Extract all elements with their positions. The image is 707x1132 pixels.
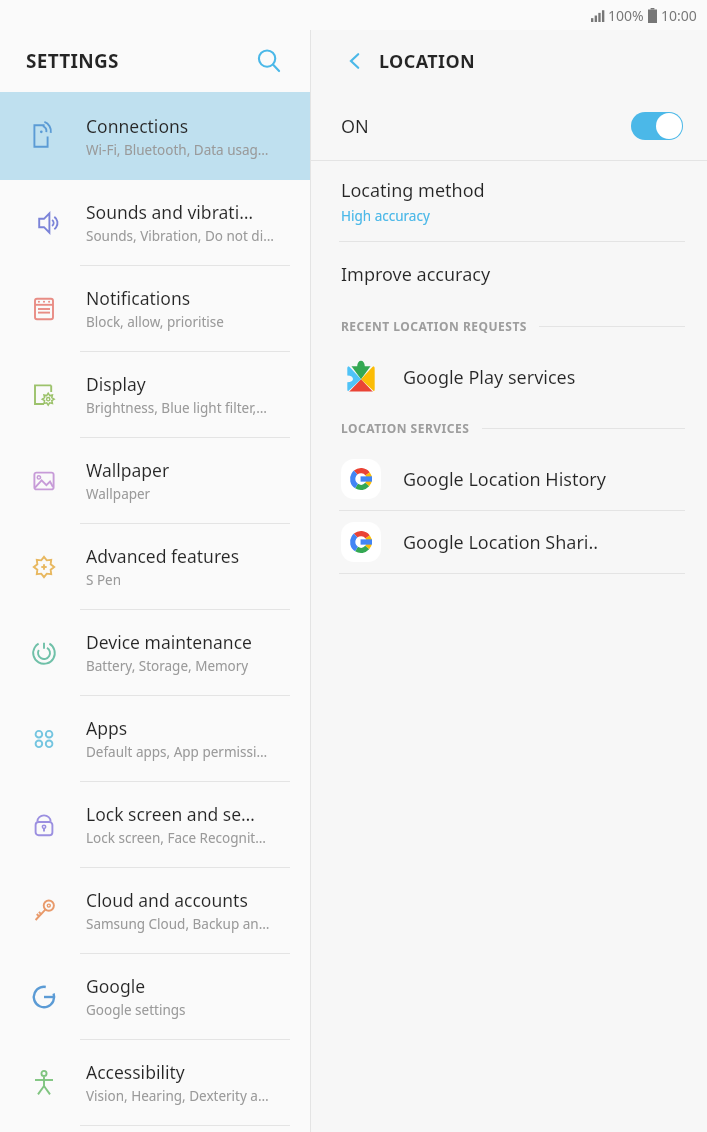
staticText: Lock screen and se… xyxy=(86,802,255,826)
staticText: Locating method xyxy=(341,178,485,203)
button[interactable]: Advanced features xyxy=(0,524,310,609)
button[interactable]: Connections xyxy=(0,92,310,180)
staticText: S Pen xyxy=(86,571,122,589)
staticText: SETTINGS xyxy=(26,48,119,74)
button[interactable]: Improve accuracy xyxy=(311,242,707,306)
staticText: Sounds, Vibration, Do not di… xyxy=(86,227,274,245)
staticText: Notifications xyxy=(86,286,191,310)
staticText: Vision, Hearing, Dexterity a… xyxy=(86,1087,269,1105)
staticText: Apps xyxy=(86,716,128,740)
staticText: Device maintenance xyxy=(86,630,252,654)
staticText: Google Location Shari.. xyxy=(403,530,599,555)
button[interactable]: Sounds and vibrati… xyxy=(0,180,310,265)
button[interactable]: Lock screen and se… xyxy=(0,782,310,867)
button[interactable]: Display xyxy=(0,352,310,437)
staticText: Connections xyxy=(86,114,189,138)
staticText: Sounds and vibrati… xyxy=(86,200,254,224)
staticText: Lock screen, Face Recognit… xyxy=(86,829,266,847)
staticText: Wi-Fi, Bluetooth, Data usag… xyxy=(86,141,269,159)
staticText: Cloud and accounts xyxy=(86,888,248,912)
staticText: Default apps, App permissi… xyxy=(86,743,268,761)
staticText: Google xyxy=(86,974,146,998)
button[interactable]: Apps xyxy=(0,696,310,781)
staticText: Accessibility xyxy=(86,1060,185,1084)
button[interactable]: Google Location History xyxy=(311,448,707,510)
button[interactable]: Notifications xyxy=(0,266,310,351)
staticText: 10:00 xyxy=(661,6,697,25)
button[interactable]: ON xyxy=(311,92,707,160)
button[interactable]: Device maintenance xyxy=(0,610,310,695)
button[interactable]: Locating method xyxy=(311,161,707,241)
button[interactable]: Cloud and accounts xyxy=(0,868,310,953)
staticText: Wallpaper xyxy=(86,485,151,503)
button[interactable]: Google Location Shari.. xyxy=(311,511,707,573)
staticText: Improve accuracy xyxy=(341,262,491,287)
staticText: LOCATION xyxy=(379,49,476,74)
staticText: 100% xyxy=(608,6,644,25)
staticText: High accuracy xyxy=(341,207,430,225)
staticText: LOCATION SERVICES xyxy=(341,420,470,436)
staticText: Wallpaper xyxy=(86,458,170,482)
staticText: Google settings xyxy=(86,1001,186,1019)
button[interactable]: Back xyxy=(333,39,377,83)
staticText: Display xyxy=(86,372,146,396)
button[interactable]: Wallpaper xyxy=(0,438,310,523)
staticText: Block, allow, prioritise xyxy=(86,313,224,331)
staticText: Google Location History xyxy=(403,467,606,492)
button[interactable]: Accessibility xyxy=(0,1040,310,1125)
staticText: Battery, Storage, Memory xyxy=(86,657,249,675)
staticText: Advanced features xyxy=(86,544,240,568)
button[interactable]: Search xyxy=(246,38,292,84)
staticText: RECENT LOCATION REQUESTS xyxy=(341,318,527,334)
button[interactable]: Google Play services xyxy=(311,346,707,408)
staticText: ON xyxy=(341,114,631,139)
staticText: Google Play services xyxy=(403,365,576,390)
button[interactable]: Google xyxy=(0,954,310,1039)
staticText: Brightness, Blue light filter,… xyxy=(86,399,267,417)
staticText: Samsung Cloud, Backup an… xyxy=(86,915,270,933)
